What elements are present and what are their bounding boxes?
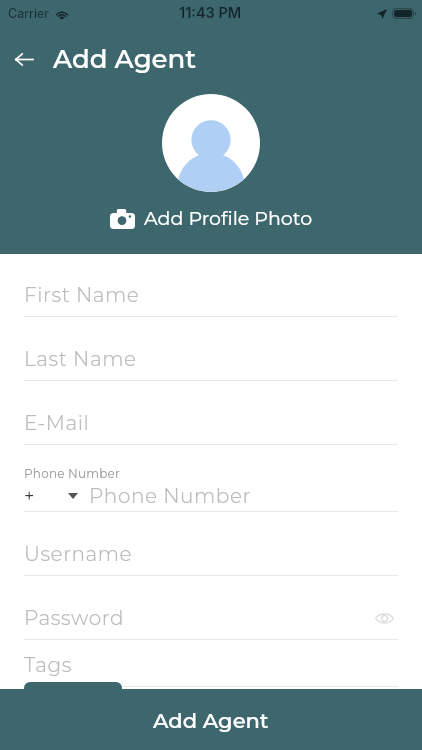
button[interactable]: Add Profile Photo [106, 205, 317, 232]
staticText: Phone Number [89, 484, 251, 508]
button[interactable]: Add Agent [0, 689, 422, 750]
button[interactable]: Show password [370, 604, 398, 632]
staticText: 11:43 PM [179, 4, 242, 22]
staticText: Tags [24, 653, 72, 677]
button[interactable]: E-Mail [24, 401, 398, 465]
staticText: Add Agent [53, 43, 197, 75]
staticText: Password [24, 606, 124, 630]
staticText: Username [24, 542, 133, 566]
button[interactable]: Last Name [24, 337, 398, 401]
button[interactable]: Phone Number [24, 465, 398, 532]
button[interactable]: Password [24, 596, 398, 660]
button[interactable]: Tag [24, 682, 122, 722]
button[interactable]: Tags [24, 643, 398, 707]
staticText: Add Agent [153, 708, 269, 734]
button[interactable]: Username [24, 532, 398, 596]
staticText: + [24, 485, 35, 507]
button[interactable]: Add profile photo [162, 94, 260, 192]
button[interactable]: First Name [24, 273, 398, 337]
staticText: Add Profile Photo [144, 207, 313, 230]
button[interactable]: Back [6, 41, 42, 77]
staticText: First Name [24, 283, 140, 307]
staticText: E-Mail [24, 411, 90, 435]
staticText: Phone Number [24, 466, 121, 481]
staticText: Carrier [8, 6, 49, 21]
staticText: Last Name [24, 347, 137, 371]
